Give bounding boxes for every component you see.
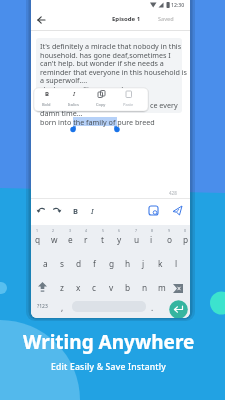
staticText: i — [150, 234, 153, 245]
button[interactable] — [34, 12, 50, 28]
staticText: y — [117, 234, 122, 245]
staticText: c — [92, 282, 96, 293]
staticText: j — [142, 258, 145, 269]
staticText: ce every — [150, 100, 178, 110]
staticText: I — [73, 90, 76, 98]
staticText: k — [158, 258, 163, 269]
staticText: m — [158, 282, 166, 293]
button[interactable]: B — [34, 88, 148, 111]
staticText: Copy — [96, 102, 106, 107]
staticText: born into the family of pure breed — [40, 117, 155, 127]
staticText: can't help. but wonder if she needs a — [40, 58, 164, 68]
button[interactable]: Episode 1 — [31, 10, 190, 31]
button[interactable] — [145, 201, 161, 219]
staticText: 9 — [168, 228, 171, 233]
staticText: p — [183, 234, 189, 245]
staticText: d — [76, 258, 82, 269]
staticText: a superwolf.... — [40, 75, 88, 85]
staticText: o — [167, 234, 173, 245]
staticText: damn time... — [40, 108, 83, 118]
staticText: Writing Anywhere — [23, 329, 195, 355]
staticText: I — [91, 206, 94, 216]
staticText: z — [60, 282, 64, 293]
staticText: f — [93, 258, 96, 269]
staticText: w — [51, 234, 58, 245]
button[interactable] — [85, 201, 99, 219]
staticText: 5 — [102, 228, 105, 233]
staticText: ?123 — [37, 303, 48, 310]
staticText: l — [175, 258, 178, 269]
staticText: 4 — [85, 228, 88, 233]
staticText: a — [43, 258, 48, 269]
staticText: reminder that everyone in this household… — [40, 67, 188, 77]
button[interactable] — [50, 201, 66, 219]
staticText: 428 — [169, 190, 177, 196]
button[interactable] — [169, 201, 185, 219]
staticText: Italics — [68, 102, 79, 107]
staticText: x — [76, 282, 81, 293]
staticText: r — [84, 234, 88, 245]
staticText: she keeps yelling on and on, — [40, 84, 136, 94]
staticText: s — [60, 258, 64, 269]
staticText: u — [134, 234, 140, 245]
staticText: n — [142, 282, 148, 293]
staticText: g — [109, 258, 115, 269]
staticText: Edit Easily & Save Instantly — [51, 361, 167, 373]
staticText: h — [125, 258, 131, 269]
staticText: 3 — [69, 228, 72, 233]
staticText: 6 — [118, 228, 121, 233]
staticText: Saved — [158, 15, 174, 22]
button[interactable] — [169, 299, 188, 318]
staticText: . — [151, 302, 154, 313]
staticText: 0 — [184, 228, 187, 233]
staticText: B — [73, 206, 78, 216]
button[interactable] — [68, 201, 82, 219]
staticText: Paste — [123, 102, 134, 107]
staticText: Episode 1 — [112, 15, 141, 23]
staticText: b — [125, 282, 131, 293]
staticText: t — [101, 234, 104, 245]
button[interactable] — [72, 300, 146, 313]
staticText: Bold — [42, 102, 51, 107]
staticText: 8 — [151, 228, 154, 233]
staticText: 2 — [52, 228, 55, 233]
staticText: , — [61, 302, 64, 313]
button[interactable] — [34, 201, 50, 219]
button[interactable] — [153, 12, 179, 28]
staticText: e — [68, 234, 73, 245]
staticText: 12:30 — [171, 1, 185, 8]
staticText: 7 — [135, 228, 138, 233]
staticText: 1 — [36, 228, 39, 233]
staticText: v — [109, 282, 114, 293]
staticText: q — [35, 234, 41, 245]
staticText: B — [45, 90, 49, 98]
staticText: It's definitely a miracle that nobody in… — [40, 41, 182, 51]
staticText: household. has gone deaf,sometimes I — [40, 50, 171, 60]
